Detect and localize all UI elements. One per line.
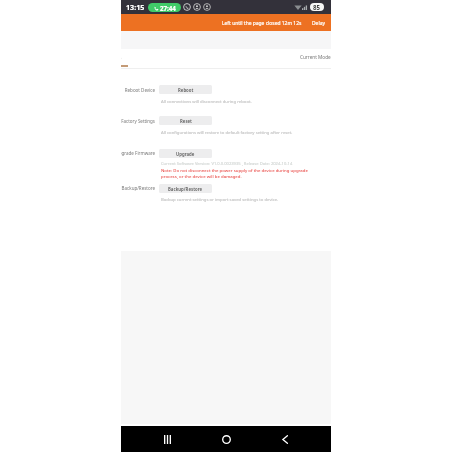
staticText: Current Mode xyxy=(300,54,331,60)
other: Battery 85 percent xyxy=(310,3,324,11)
button[interactable]: Current Mode xyxy=(300,54,331,60)
button[interactable]: Reboot Device xyxy=(121,87,155,93)
staticText: Reset xyxy=(180,118,192,124)
staticText: Backup/Restore xyxy=(121,185,155,191)
staticText: Upgrade xyxy=(176,151,195,157)
staticText: Backup current settings or import saved … xyxy=(161,196,279,202)
button[interactable]: Quick Setup xyxy=(121,55,122,61)
button[interactable]: Delay xyxy=(311,20,326,27)
staticText: Current Software Version: V1.0.0.0023935… xyxy=(161,161,293,167)
staticText: 85 xyxy=(313,3,321,11)
button[interactable]: Back xyxy=(272,427,297,452)
staticText: Delay xyxy=(312,20,325,27)
button[interactable]: Backup/Restore xyxy=(159,184,212,193)
button[interactable]: Home xyxy=(214,427,239,452)
button[interactable]: Factory Settings xyxy=(121,118,155,124)
button[interactable]: Upgrade Firmware xyxy=(121,150,155,156)
staticText: Upgrade Firmware xyxy=(121,150,155,156)
staticText: All configurations will restore to defau… xyxy=(161,129,293,135)
staticText: Note: Do not disconnect the power supply… xyxy=(161,167,314,179)
button[interactable]: Reset xyxy=(159,116,212,125)
staticText: Backup/Restore xyxy=(168,186,203,192)
button[interactable]: Ongoing call 27:44 xyxy=(148,3,181,12)
button[interactable]: Reboot xyxy=(159,85,212,94)
staticText: Quick Setup xyxy=(121,55,122,61)
staticText: 27:44 xyxy=(160,4,176,12)
button[interactable]: Upgrade xyxy=(159,149,212,158)
button[interactable]: Recent apps xyxy=(155,427,180,452)
staticText: Factory Settings xyxy=(121,118,155,124)
staticText: Reboot xyxy=(178,87,194,93)
button[interactable]: Backup/Restore xyxy=(121,185,155,191)
staticText: Reboot Device xyxy=(124,87,155,93)
staticText: All connections will disconnect during r… xyxy=(161,98,252,104)
staticText: 13:15 xyxy=(126,2,145,12)
staticText: Left until the page closed 12m 12s xyxy=(222,20,302,27)
